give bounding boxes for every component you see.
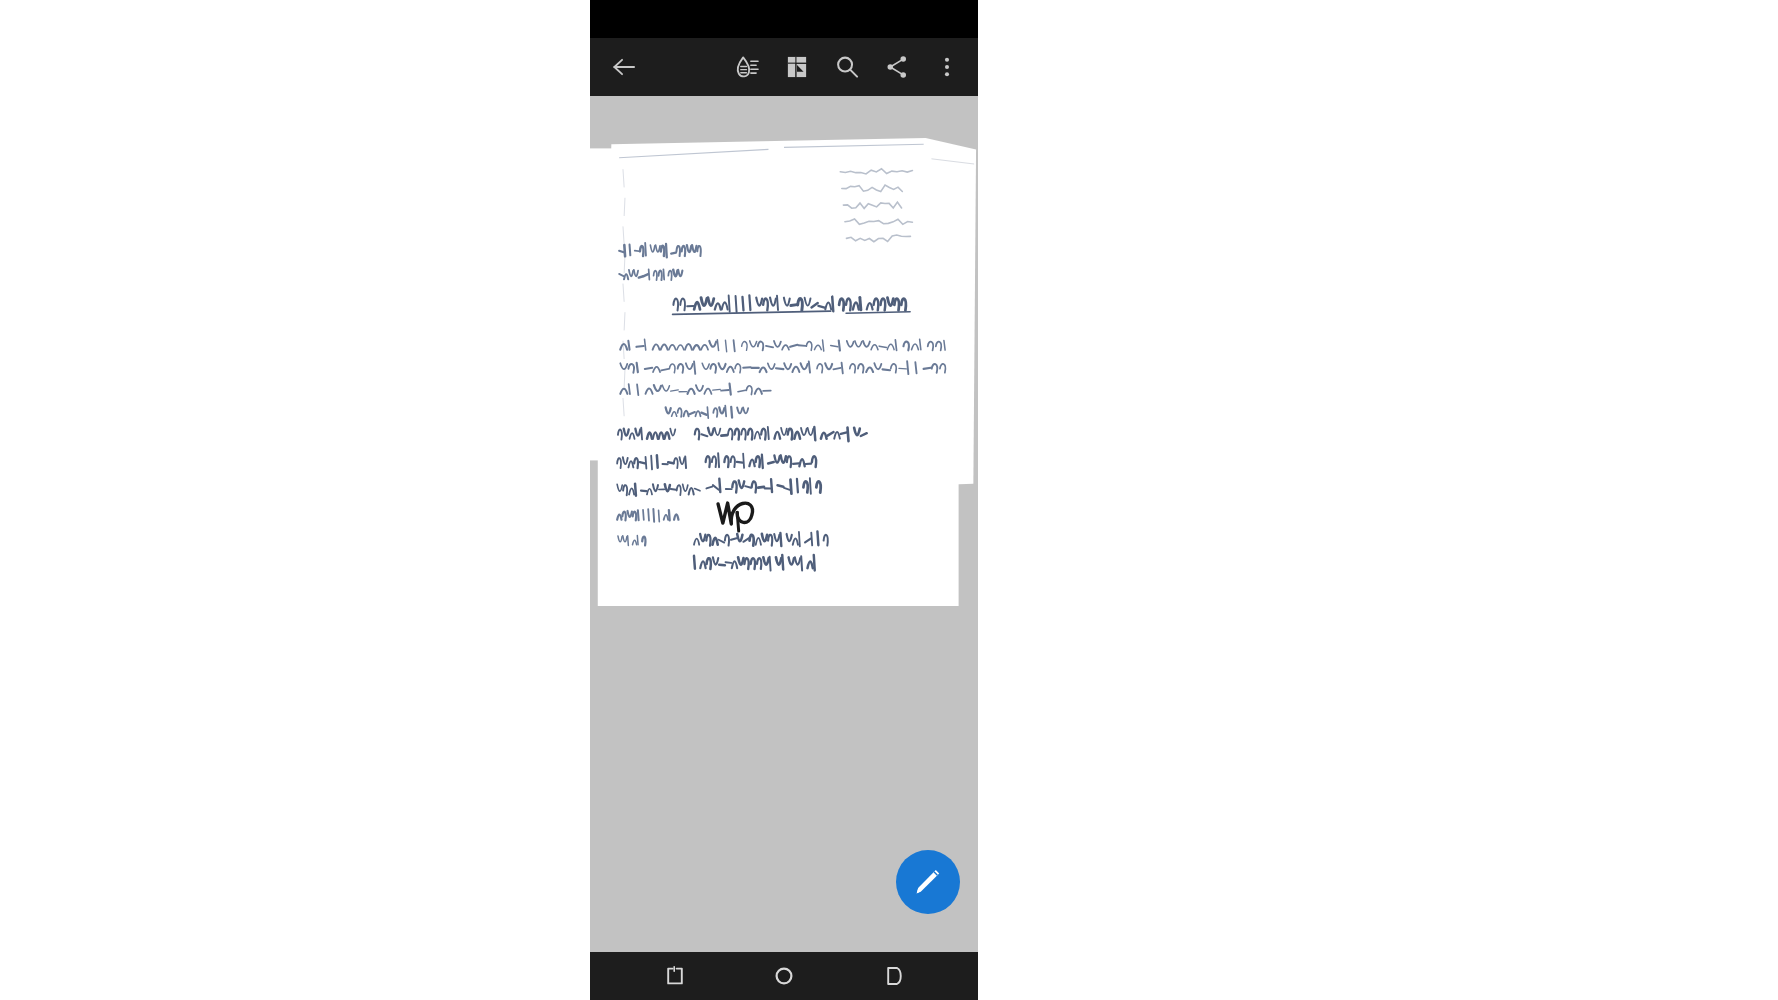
button[interactable]: Search bbox=[822, 42, 872, 92]
button[interactable]: Home bbox=[760, 952, 808, 1000]
button[interactable]: Back bbox=[602, 45, 646, 89]
button[interactable]: Edit bbox=[896, 850, 960, 914]
button[interactable]: More options bbox=[922, 42, 972, 92]
button[interactable]: Share bbox=[872, 42, 922, 92]
button[interactable]: Back bbox=[869, 952, 917, 1000]
button[interactable]: Adjust contrast bbox=[722, 42, 772, 92]
button[interactable]: Recent apps bbox=[651, 952, 699, 1000]
button[interactable] bbox=[590, 138, 978, 658]
button[interactable]: Crop bbox=[772, 42, 822, 92]
